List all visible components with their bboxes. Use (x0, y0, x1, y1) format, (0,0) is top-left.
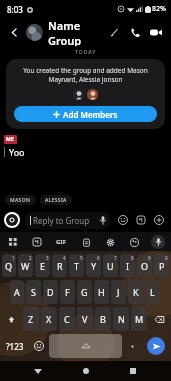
button[interactable]: X (41, 307, 57, 331)
button[interactable]: G (77, 280, 92, 304)
button[interactable]: B (95, 307, 111, 331)
button[interactable]: Clipboard (79, 235, 93, 249)
staticText: 8 (131, 255, 134, 261)
staticText: 6 (97, 255, 100, 261)
staticText: J (117, 286, 120, 298)
staticText: M (135, 313, 144, 325)
button[interactable]: GIF (54, 235, 68, 249)
button[interactable]: J (111, 280, 126, 304)
staticText: E (40, 260, 46, 272)
staticText: ME (6, 136, 15, 143)
button[interactable]: Send (147, 337, 165, 355)
button[interactable]: Voice input (151, 235, 165, 249)
staticText: P (159, 260, 165, 272)
button[interactable]: Theme (127, 235, 141, 249)
button[interactable]: ?123 (2, 334, 28, 358)
button[interactable]: Q (2, 254, 16, 277)
button[interactable]: A (10, 280, 24, 304)
button[interactable]: ALESSIA (40, 195, 72, 205)
staticText: X (46, 313, 52, 325)
staticText: S (31, 286, 36, 298)
staticText: K (133, 286, 139, 298)
button[interactable]: Z (23, 307, 39, 331)
button[interactable]: L (145, 280, 160, 304)
button[interactable]: F (60, 280, 75, 304)
staticText: TODAY (0, 48, 171, 55)
staticText: A (14, 286, 20, 298)
staticText: ALESSIA (45, 197, 67, 204)
staticText: G (81, 286, 88, 298)
staticText: N (118, 313, 125, 325)
button[interactable]: Emoji keyboard (30, 334, 47, 358)
staticText: W (21, 260, 30, 272)
button[interactable]: I (120, 254, 135, 277)
button[interactable]: MASON (5, 195, 36, 205)
staticText: GIF (56, 238, 66, 246)
button[interactable]: Back (28, 361, 48, 381)
button[interactable]: W (18, 254, 33, 277)
staticText: T (74, 260, 80, 272)
staticText: R (57, 260, 63, 272)
staticText: L (150, 286, 155, 298)
staticText: B (100, 313, 106, 325)
button[interactable]: V (77, 307, 93, 331)
button[interactable]: Shift (2, 307, 21, 331)
button[interactable]: Video call (146, 22, 166, 42)
button[interactable]: Call (125, 22, 145, 42)
staticText: 5 (80, 255, 83, 261)
staticText: 1 (12, 255, 15, 261)
button[interactable]: Stickers (133, 212, 149, 228)
button[interactable]: S (26, 280, 41, 304)
staticText: V (82, 313, 88, 325)
button[interactable]: R (52, 254, 67, 277)
staticText: 7 (114, 255, 117, 261)
button[interactable]: Back (5, 23, 23, 41)
button[interactable]: Emoji (115, 212, 131, 228)
button[interactable]: Attach (151, 212, 167, 228)
button[interactable]: N (113, 307, 129, 331)
button[interactable]: Space (49, 334, 122, 358)
button[interactable]: Add Members (14, 106, 157, 122)
staticText: MASON (10, 197, 31, 204)
button[interactable]: Reply to Group (25, 212, 111, 229)
staticText: 82% (152, 4, 166, 14)
staticText: 2 (29, 255, 32, 261)
staticText: D (47, 286, 54, 298)
staticText: O (141, 260, 149, 272)
staticText: Z (28, 313, 34, 325)
button[interactable]: Stickers (30, 235, 44, 249)
button[interactable]: U (103, 254, 118, 277)
staticText: You created the group and added Mason Ma… (14, 66, 157, 84)
staticText: Y (91, 260, 97, 272)
button[interactable]: Settings (103, 235, 117, 249)
staticText: Q (5, 260, 13, 272)
staticText: 3 (46, 255, 49, 261)
staticText: H (98, 286, 105, 298)
button[interactable]: Period (124, 334, 140, 358)
staticText: 9 (148, 255, 151, 261)
button[interactable]: E (35, 254, 50, 277)
button[interactable]: T (69, 254, 84, 277)
staticText: Yoo (9, 146, 25, 158)
button[interactable]: C (59, 307, 75, 331)
button[interactable]: Apps (6, 235, 20, 249)
button[interactable]: Recent apps (123, 361, 143, 381)
button[interactable]: P (154, 254, 169, 277)
button[interactable]: H (94, 280, 109, 304)
staticText: ?123 (6, 341, 24, 352)
button[interactable]: Home (76, 361, 96, 381)
button[interactable]: M (131, 307, 147, 331)
staticText: Name Group (48, 18, 105, 46)
button[interactable]: O (137, 254, 152, 277)
button[interactable]: D (43, 280, 58, 304)
staticText: U (107, 260, 114, 272)
staticText: 0 (165, 255, 168, 261)
button[interactable]: Edit (105, 23, 123, 41)
staticText: Reply to Group (33, 215, 100, 226)
button[interactable]: Backspace (149, 307, 169, 331)
staticText: 4 (63, 255, 66, 261)
button[interactable]: Y (86, 254, 101, 277)
button[interactable]: Camera (4, 212, 20, 228)
staticText: C (64, 313, 70, 325)
button[interactable]: K (128, 280, 143, 304)
